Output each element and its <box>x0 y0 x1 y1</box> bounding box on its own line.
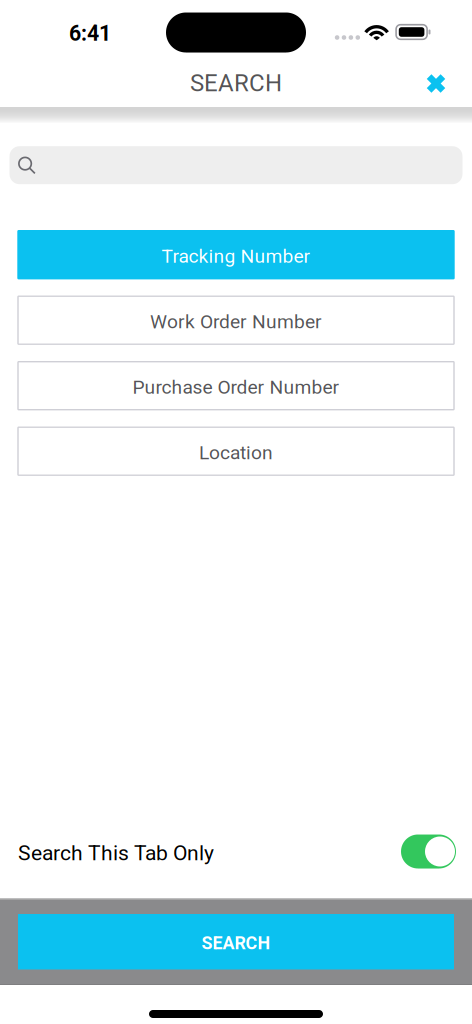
button[interactable]: Work Order Number <box>18 296 454 344</box>
button[interactable]: Close <box>414 62 458 106</box>
button[interactable]: Tracking Number <box>18 231 454 279</box>
staticText: SEARCH <box>201 933 270 954</box>
staticText: Search This Tab Only <box>18 841 214 865</box>
button[interactable]: Search This Tab Only <box>401 834 456 868</box>
staticText: Location <box>199 441 273 464</box>
staticText: 6:41 <box>69 21 111 46</box>
button[interactable]: Location <box>18 427 454 475</box>
button[interactable]: SEARCH <box>18 914 454 969</box>
button[interactable]: Purchase Order Number <box>18 362 454 410</box>
staticText: Tracking Number <box>161 245 310 267</box>
staticText: SEARCH <box>190 69 282 97</box>
staticText: Purchase Order Number <box>132 376 339 398</box>
staticText: Work Order Number <box>150 310 322 333</box>
